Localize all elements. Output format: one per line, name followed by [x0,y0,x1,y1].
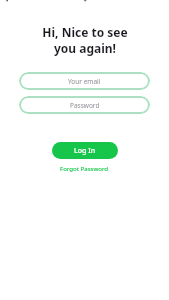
button[interactable]: Forgot Password [54,160,115,176]
button[interactable]: Password [19,96,150,114]
staticText: Hi, Nice to see you again! [42,24,128,57]
staticText: Your email [68,77,101,86]
staticText: Forgot Password [60,164,109,172]
button[interactable]: Log In [52,142,118,159]
staticText: Password [70,101,100,110]
staticText: Log In [74,146,96,156]
button[interactable]: Your email [19,72,150,90]
